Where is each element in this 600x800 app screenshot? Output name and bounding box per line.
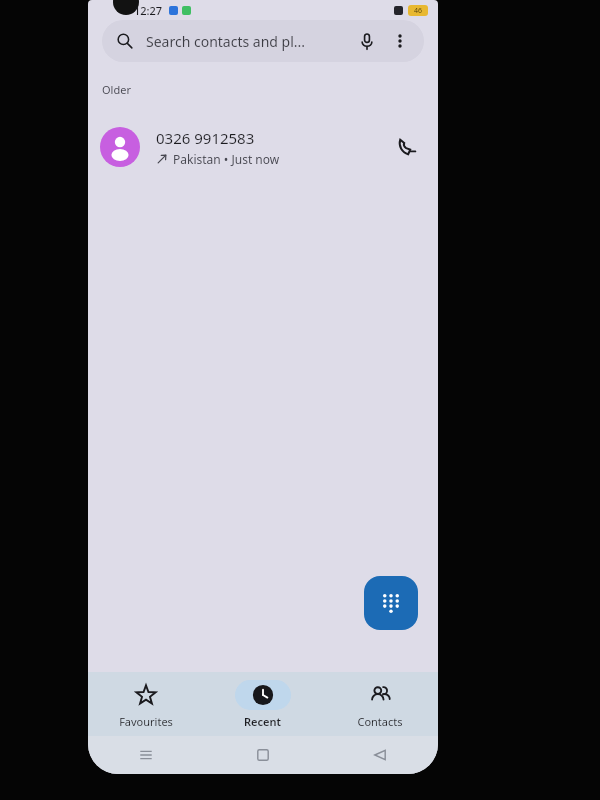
button[interactable]: Dialpad xyxy=(364,576,418,630)
staticText: 46 xyxy=(414,6,423,16)
staticText: Older xyxy=(102,82,131,97)
button[interactable]: Contacts xyxy=(321,672,438,736)
staticText: Search contacts and pl... xyxy=(146,32,306,51)
staticText: Pakistan • Just now xyxy=(173,151,280,167)
button[interactable]: Voice search xyxy=(356,30,378,52)
staticText: 0326 9912583 xyxy=(156,128,255,148)
button[interactable]: Favourites xyxy=(88,672,204,736)
button[interactable]: Back xyxy=(367,742,393,768)
button[interactable]: Home xyxy=(250,742,276,768)
other: Search xyxy=(116,32,134,50)
button[interactable]: Search xyxy=(102,20,424,62)
staticText: Recent xyxy=(244,714,281,729)
button[interactable]: 0326 9912583 xyxy=(88,119,438,175)
staticText: 12:27 xyxy=(134,3,163,18)
button[interactable]: Recent xyxy=(204,672,321,736)
button[interactable]: Recent apps xyxy=(133,742,159,768)
staticText: Favourites xyxy=(119,714,173,729)
staticText: Contacts xyxy=(357,714,403,729)
button[interactable]: Call xyxy=(390,130,424,164)
button[interactable]: More options xyxy=(390,31,410,51)
